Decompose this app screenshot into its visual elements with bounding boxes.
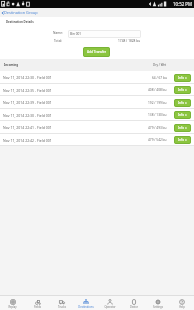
staticText: Trucks [58,305,66,309]
staticText: 408 / 408 bu [148,88,167,92]
staticText: Device [130,305,138,309]
button[interactable]: Info » [174,74,191,82]
staticText: Name: [53,31,63,35]
staticText: Info » [178,76,187,80]
staticText: 192 / 199 bu [148,101,167,105]
staticText: Incoming [4,63,19,67]
button[interactable]: Info » [174,111,191,119]
staticText: Nov 11, 2014 22:30 - Field 001 [3,113,52,118]
staticText: 138 / 130 bu [148,113,167,117]
button[interactable]: Help [170,296,194,310]
button[interactable]: Info » [174,86,191,94]
button[interactable]: Fields [25,296,50,310]
staticText: Total: [54,39,63,43]
button[interactable]: Nov 11, 2014 22:39 - Field 001 [0,96,194,109]
button[interactable]: Info » [174,99,191,107]
button[interactable]: Destinations [74,296,98,310]
button[interactable]: Settings [146,296,170,310]
button[interactable]: Operator [98,296,122,310]
staticText: 64 / 67 bu [152,76,167,80]
staticText: Fields [34,305,41,309]
button[interactable]: Destination Group [0,8,194,17]
button[interactable]: Device [122,296,146,310]
staticText: Help [179,305,185,309]
staticText: Operator [104,305,116,309]
staticText: Dry / Wet [153,63,167,67]
button[interactable]: Nov 11, 2014 22:30 - Field 001 [0,109,194,121]
staticText: Nov 11, 2014 22:42 - Field 001 [3,138,52,143]
button[interactable]: Info » [174,136,191,144]
button[interactable]: Nov 11, 2014 22:35 - Field 001 [0,84,194,96]
staticText: Destination Group [4,10,38,15]
staticText: 10:52 PM [173,1,193,7]
staticText: Settings [153,305,163,309]
staticText: Replay [8,305,17,309]
button[interactable]: Nov 11, 2014 22:41 - Field 001 [0,121,194,134]
staticText: Info » [178,88,187,92]
staticText: Nov 11, 2014 22:30 - Field 001 [3,75,52,80]
staticText: Info » [178,126,187,130]
staticText: Info » [178,138,187,142]
button[interactable]: Trucks [50,296,74,310]
button[interactable]: Nov 11, 2014 22:30 - Field 001 [0,71,194,84]
staticText: 479 / 493 bu [148,126,167,130]
staticText: Bin 001 [70,32,82,36]
staticText: Nov 11, 2014 22:39 - Field 001 [3,100,52,105]
staticText: Info » [178,101,187,105]
staticText: 479 / 542 bu [148,138,167,142]
staticText: 1748 / 1828 bu [118,39,141,43]
button[interactable]: Nov 11, 2014 22:42 - Field 001 [0,134,194,146]
staticText: Info » [178,113,187,117]
button[interactable]: Add Transfer [83,47,110,57]
staticText: Destination Details [6,20,34,24]
button[interactable]: Replay [0,296,25,310]
button[interactable]: Info » [174,124,191,132]
button[interactable]: Bin 001 [68,30,141,38]
staticText: Add Transfer [87,50,107,54]
staticText: Nov 11, 2014 22:35 - Field 001 [3,88,52,93]
staticText: Nov 11, 2014 22:41 - Field 001 [3,125,52,130]
staticText: Destinations [78,305,94,309]
